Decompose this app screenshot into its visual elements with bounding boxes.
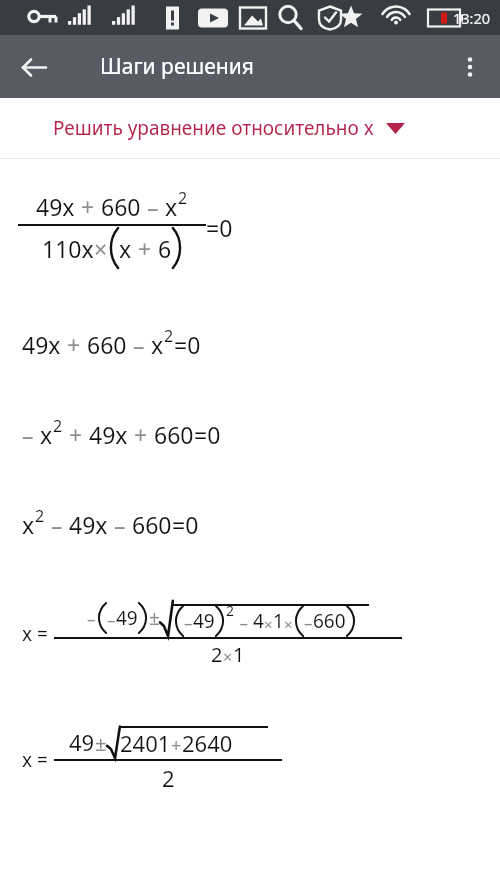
staticText: Шаги решения [100,52,254,81]
staticText: 49x [22,329,61,360]
staticText: =0 [174,329,201,360]
staticText: 660 [313,608,346,634]
staticText: × [223,646,233,668]
staticText: 2 [164,325,174,347]
staticText: 660 [132,509,172,540]
staticText: + [61,329,87,360]
staticText: 2 [35,505,45,527]
staticText: 1 [273,608,284,634]
button[interactable]: More options [447,44,493,90]
staticText: – [127,329,151,360]
staticText: – [108,509,132,540]
staticText: x = [22,621,48,647]
staticText: 49x [89,419,128,450]
staticText: =0 [194,419,221,450]
staticText: 660 [101,191,141,222]
staticText: x [151,329,164,360]
staticText: – [107,608,116,631]
staticText: 4 [253,608,264,634]
staticText: =0 [206,212,233,243]
staticText: 49 [193,608,215,634]
staticText: 660 [87,329,127,360]
staticText: ± [149,605,160,631]
staticText: x [165,191,178,222]
staticText: 49x [36,191,75,222]
staticText: x [119,233,132,264]
staticText: × [94,233,108,264]
staticText: – [22,419,40,450]
staticText: + [63,419,89,450]
staticText: + [128,419,154,450]
staticText: 660 [154,419,194,450]
staticText: 2401 [120,728,171,758]
staticText: x [40,419,53,450]
button[interactable]: Решить уравнение относительно x [0,98,500,158]
staticText: 1 [233,641,245,668]
staticText: 2 [162,763,175,793]
staticText: 49 [116,605,138,631]
staticText: 2 [178,187,188,209]
staticText: – [87,607,96,630]
staticText: + [171,733,182,758]
staticText: 49x [69,509,108,540]
staticText: – [304,611,313,634]
staticText: – [141,191,165,222]
staticText: + [132,233,158,264]
staticText: – [235,611,253,634]
staticText: Решить уравнение относительно x [53,115,374,141]
staticText: 2 [226,601,235,620]
staticText: × [284,614,293,634]
staticText: x [22,509,35,540]
staticText: 2 [53,415,63,437]
staticText: 2 [211,641,223,668]
staticText: 49 [69,727,95,757]
staticText: × [264,614,273,634]
staticText: 110x [42,233,94,264]
staticText: – [184,611,193,634]
button[interactable]: Back [10,44,56,90]
staticText: =0 [172,509,199,540]
staticText: 2640 [182,728,233,758]
staticText: ± [95,730,107,757]
staticText: 13:20 [453,8,491,28]
staticText: x = [22,747,48,773]
staticText: + [75,191,101,222]
staticText: – [45,509,69,540]
staticText: 6 [158,233,172,264]
